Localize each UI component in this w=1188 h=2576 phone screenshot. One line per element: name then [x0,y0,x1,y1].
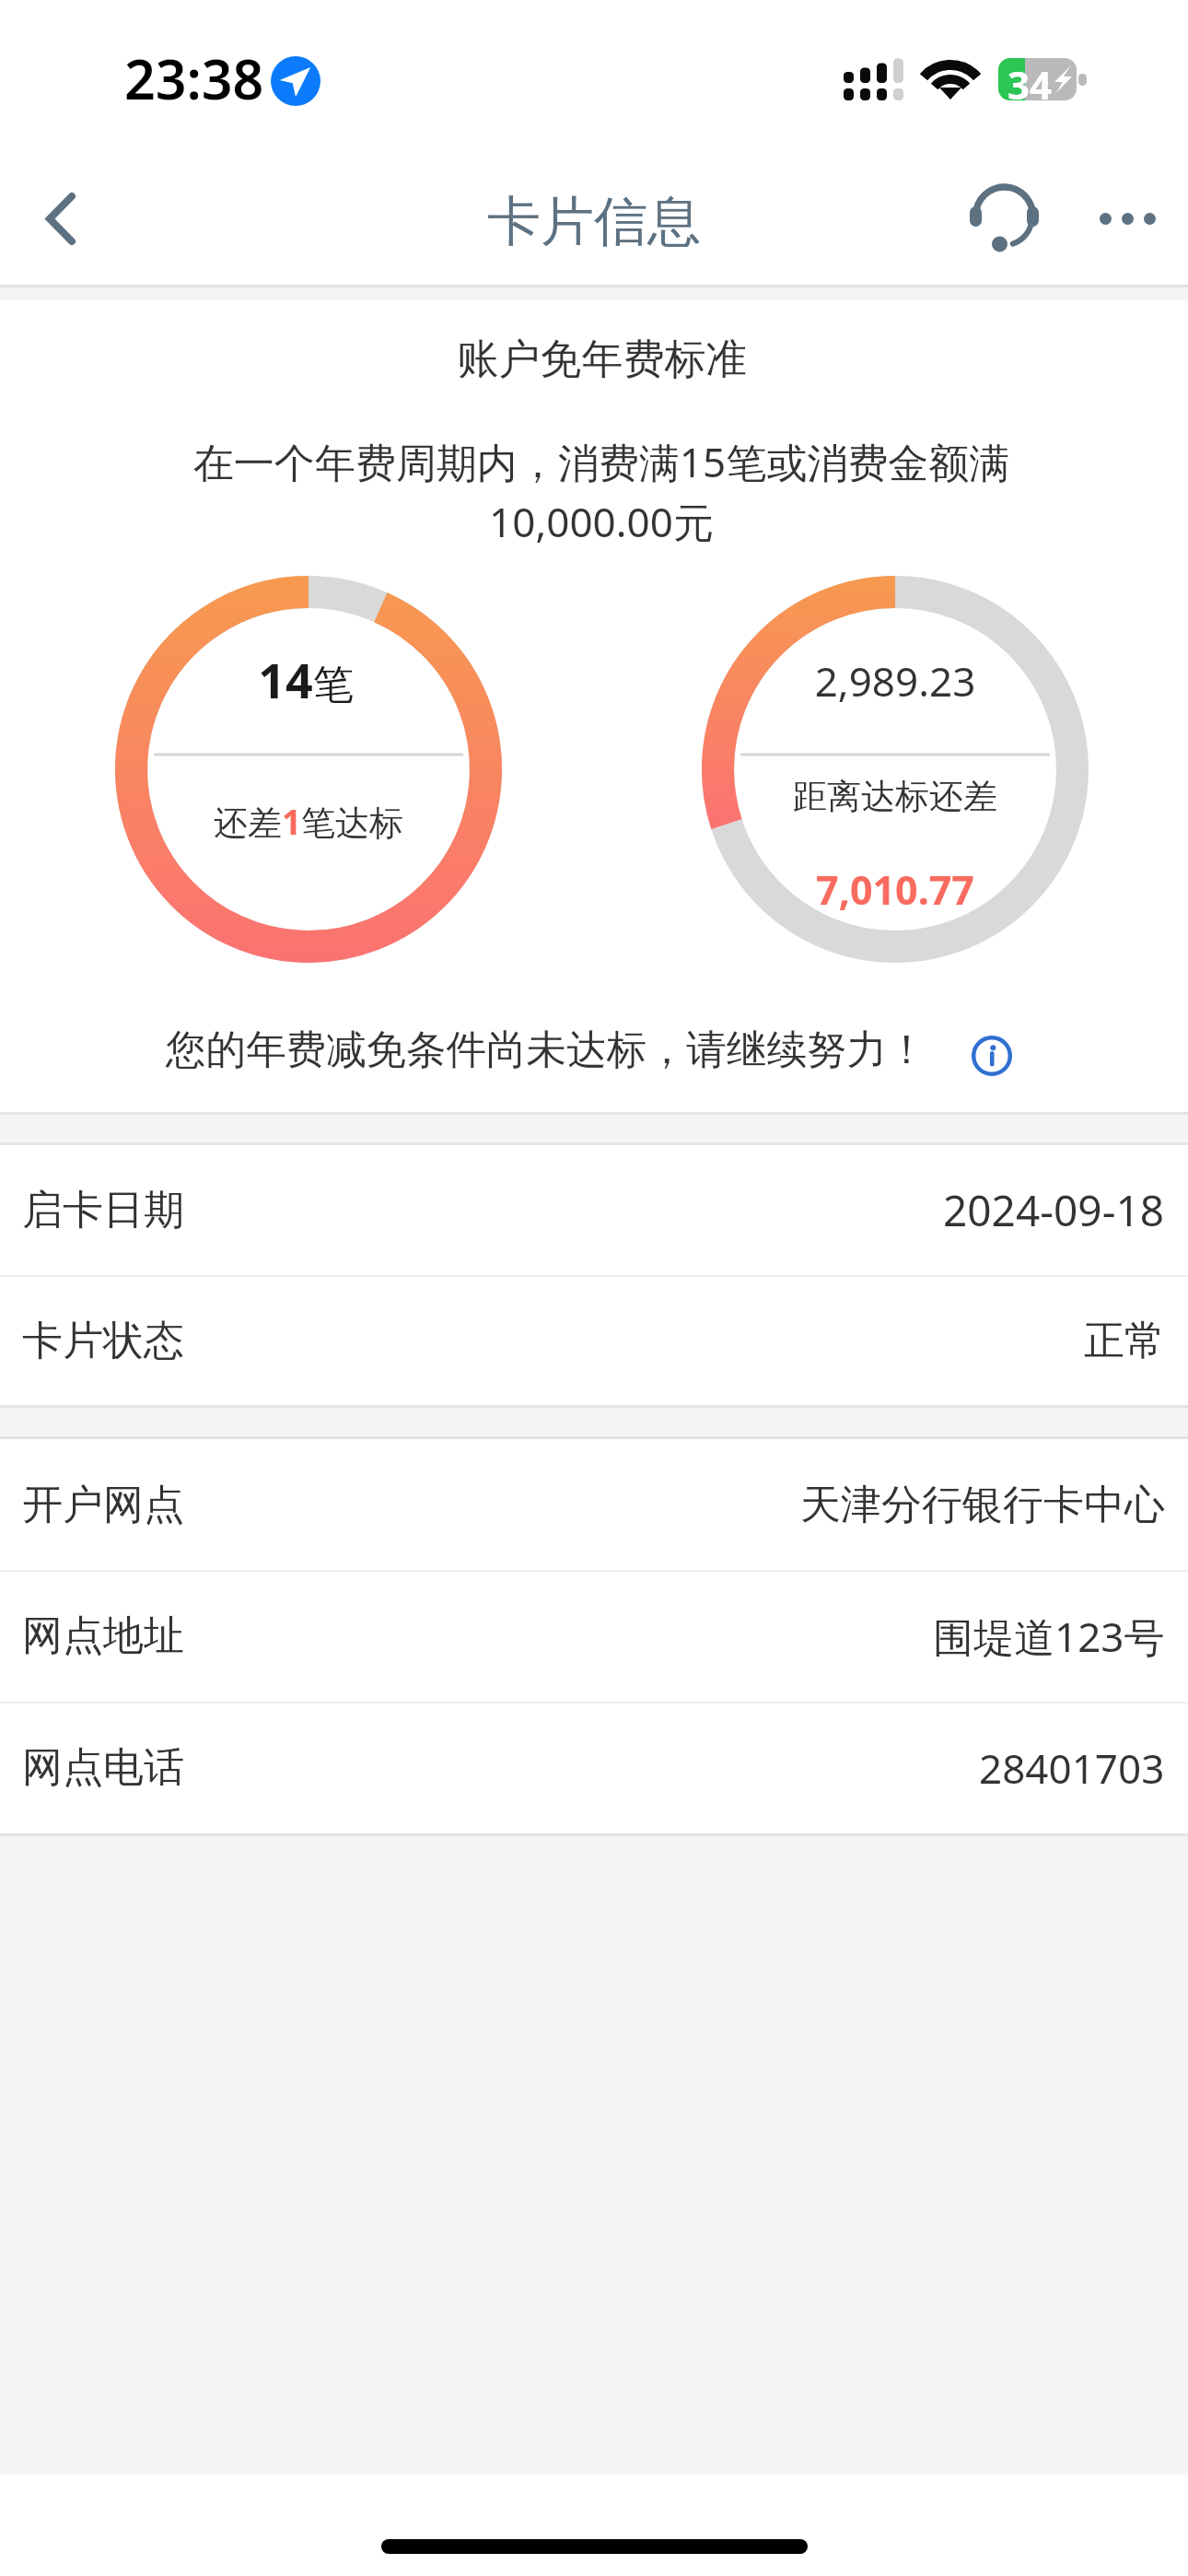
staticText: 网点地址 [22,1610,184,1661]
staticText: 围堤道123号 [933,1609,1165,1664]
button[interactable]: 开户网点 [0,1439,1188,1571]
staticText: 开户网点 [22,1480,184,1530]
staticText: 在一个年费周期内，消费满15笔或消费金额满 10,000.00元 [7,434,1188,549]
staticText: 还差1笔达标 [115,798,502,845]
staticText: 7,010.77 [702,862,1089,917]
button[interactable]: 网点电话 [0,1702,1188,1833]
staticText: 启卡日期 [22,1185,184,1235]
staticText: 14笔 [112,647,499,712]
button[interactable]: 启卡日期 [0,1144,1188,1276]
button[interactable]: 卡片状态 [0,1275,1188,1407]
staticText: 2024-09-18 [943,1181,1165,1239]
staticText: 34 [1007,58,1053,100]
staticText: 卡片信息 [0,188,1188,255]
staticText: 23:38 [124,41,264,115]
staticText: 距离达标还差 [702,775,1089,818]
staticText: 卡片状态 [22,1316,184,1366]
staticText: 2,989.23 [702,653,1089,708]
button[interactable]: Back [10,168,111,269]
staticText: 您的年费减免条件尚未达标，请继续努力！ [166,1025,927,1075]
staticText: 账户免年费标准 [8,334,1188,386]
staticText: 28401703 [979,1740,1165,1796]
button[interactable]: Customer service [954,165,1055,266]
button[interactable]: More options [1072,168,1182,269]
staticText: 网点电话 [22,1742,184,1793]
staticText: 正常 [1084,1316,1165,1366]
button[interactable]: 网点地址 [0,1570,1188,1702]
staticText: 天津分行银行卡中心 [800,1480,1165,1530]
button[interactable]: More information [963,1027,1020,1084]
